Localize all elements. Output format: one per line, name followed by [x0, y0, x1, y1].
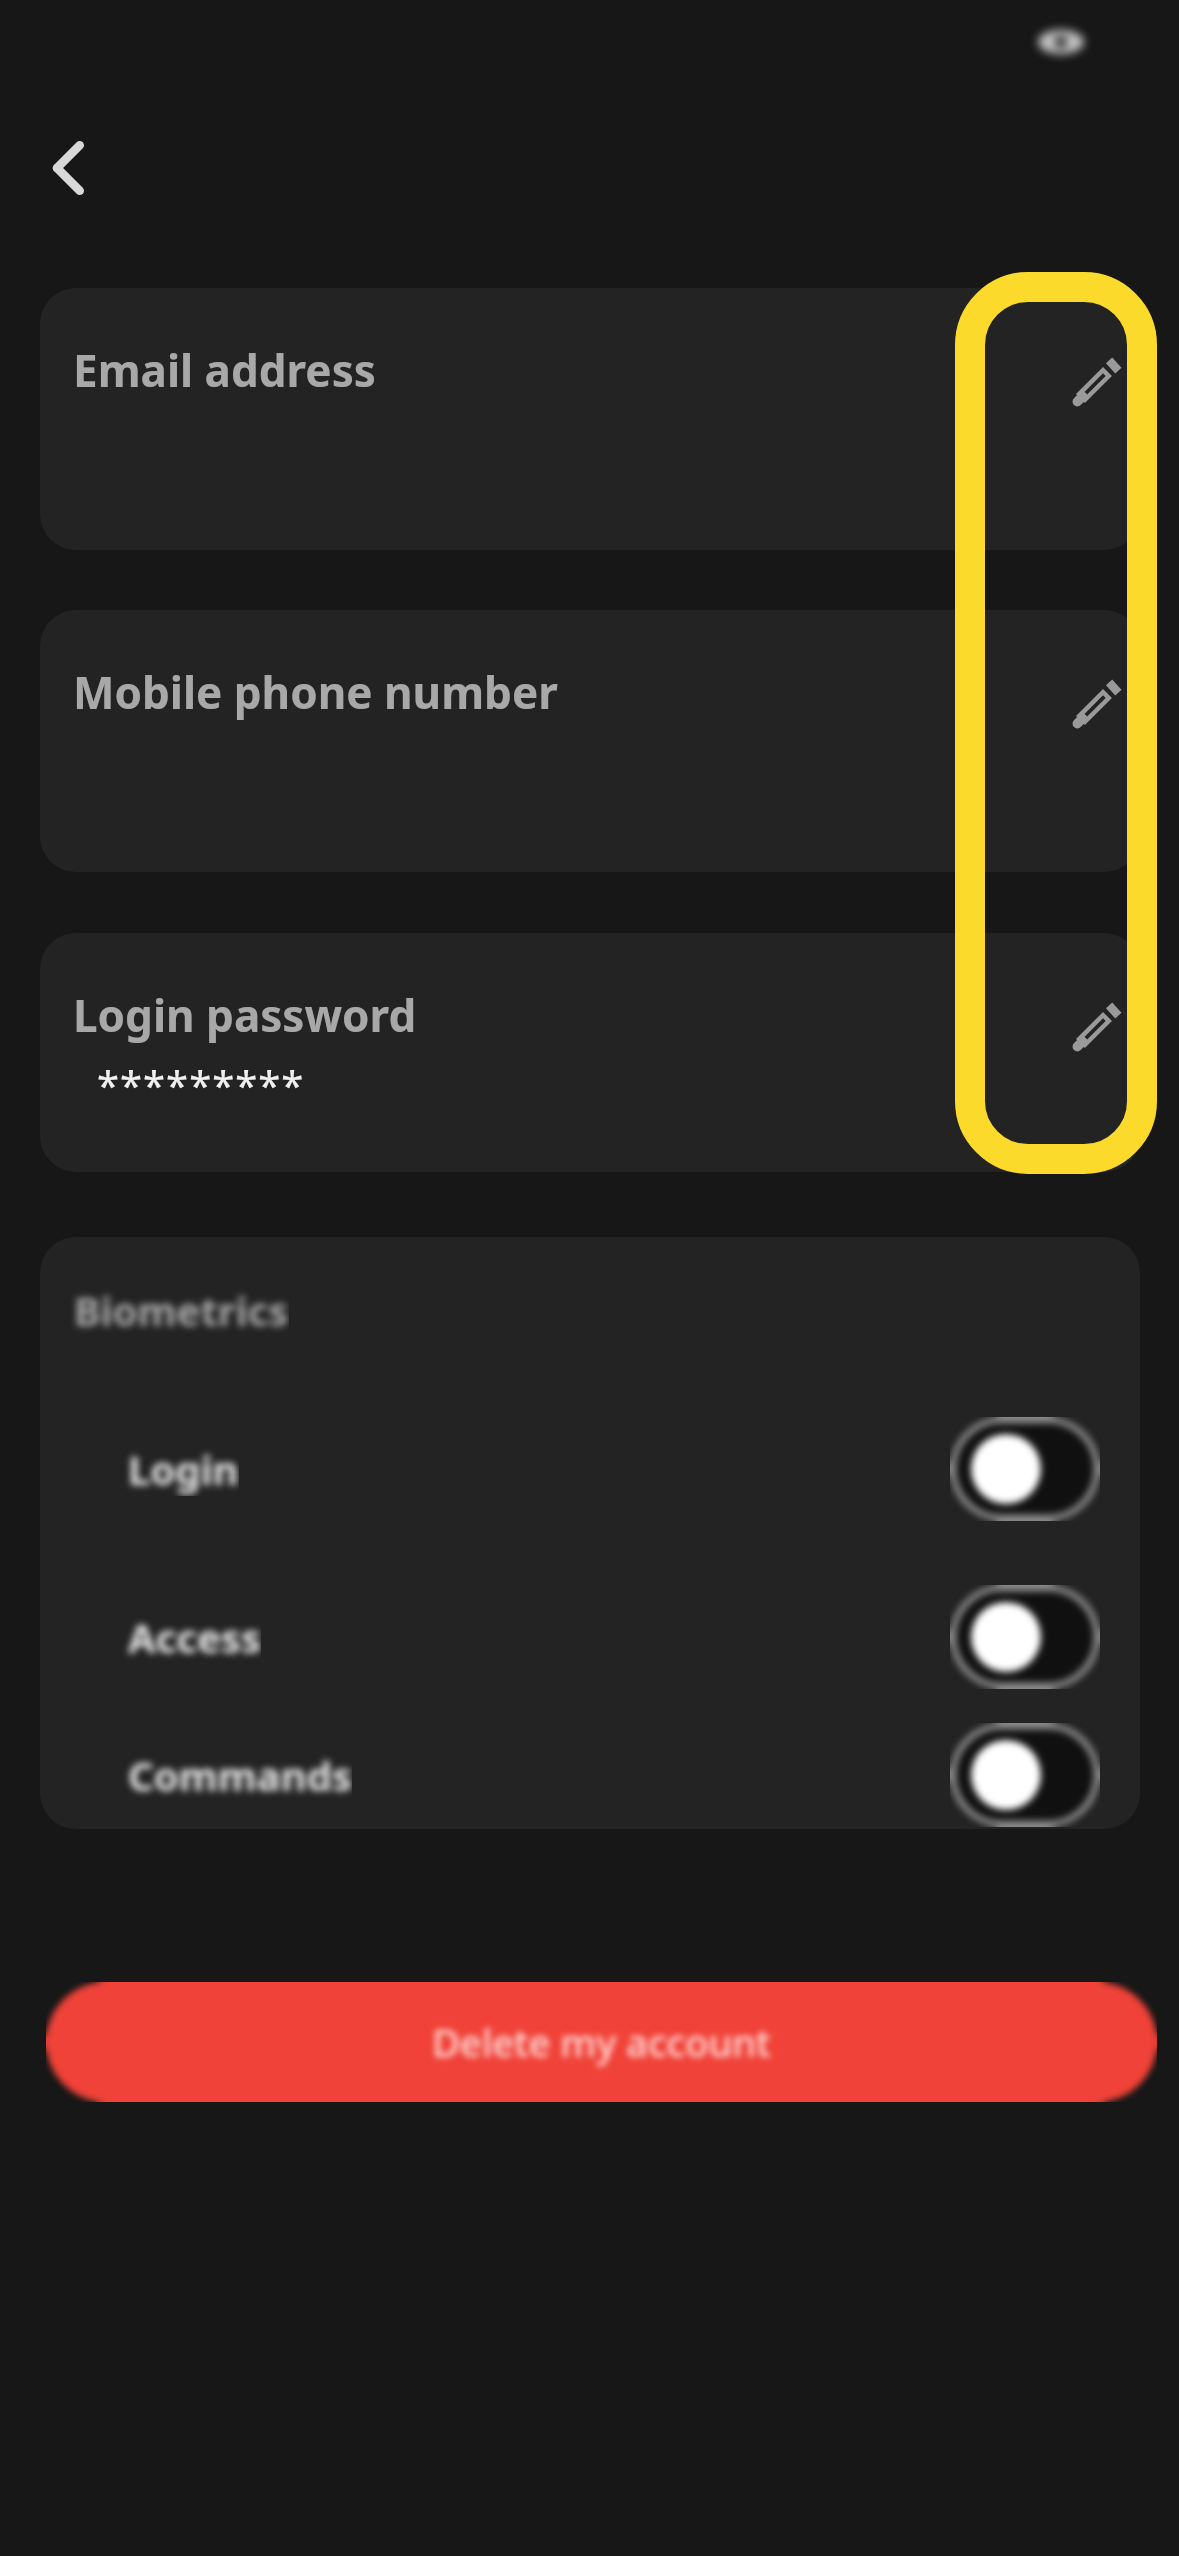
button[interactable]: Email address [40, 288, 1140, 550]
button[interactable]: Edit Email address [1047, 336, 1140, 432]
staticText: Access [128, 1610, 261, 1664]
button[interactable]: Delete my account [46, 1982, 1157, 2102]
button[interactable]: Edit Mobile phone number [1047, 658, 1140, 754]
button[interactable] [950, 1417, 1100, 1521]
staticText: Biometrics [74, 1283, 289, 1337]
button[interactable]: Login [40, 1385, 1140, 1553]
button[interactable]: Commands [40, 1721, 1140, 1829]
button[interactable]: Mobile phone number [40, 610, 1140, 872]
staticText: Login [128, 1442, 239, 1496]
button[interactable]: Edit Login password [1047, 981, 1140, 1077]
staticText: Login password [73, 985, 417, 1045]
button[interactable]: Toggle visibility [1027, 8, 1095, 76]
button[interactable] [950, 1723, 1100, 1827]
staticText: Mobile phone number [73, 662, 558, 722]
button[interactable]: Back [22, 120, 118, 216]
button[interactable]: Login password [40, 933, 1140, 1172]
button[interactable] [950, 1585, 1100, 1689]
button[interactable]: Access [40, 1553, 1140, 1721]
staticText: Delete my account [432, 2016, 771, 2068]
staticText: ********* [97, 1057, 305, 1111]
staticText: Email address [73, 340, 376, 400]
staticText: Commands [128, 1748, 352, 1802]
